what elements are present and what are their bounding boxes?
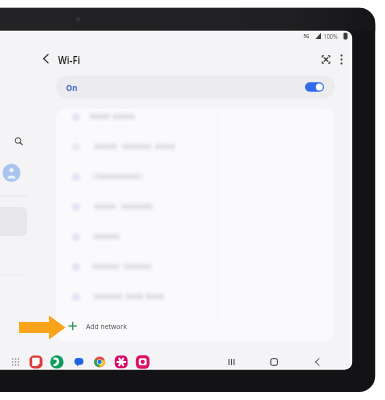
button[interactable]: Photo editor <box>114 356 127 369</box>
button[interactable] <box>56 134 334 164</box>
button[interactable] <box>56 164 334 194</box>
button[interactable]: Scan QR code <box>316 49 337 70</box>
button[interactable]: Home <box>263 352 285 372</box>
button[interactable]: Search settings <box>6 131 30 151</box>
button[interactable]: Recents <box>220 352 242 372</box>
button[interactable] <box>56 284 334 314</box>
button[interactable]: Phone <box>50 356 63 369</box>
button[interactable]: Back <box>306 352 328 372</box>
button[interactable] <box>56 254 334 284</box>
button[interactable]: Files <box>29 356 42 369</box>
button[interactable]: Chrome <box>93 356 106 369</box>
button[interactable]: Messages <box>72 356 85 369</box>
button[interactable] <box>56 104 334 134</box>
button[interactable]: All apps <box>7 355 22 370</box>
button[interactable] <box>56 314 334 341</box>
button[interactable]: Account <box>0 161 24 185</box>
button[interactable]: More options <box>332 49 351 70</box>
button[interactable]: Navigate up <box>38 48 60 70</box>
button[interactable]: Instagram <box>136 356 149 369</box>
button[interactable] <box>56 194 334 224</box>
button[interactable]: Wi-Fi on <box>56 76 335 99</box>
